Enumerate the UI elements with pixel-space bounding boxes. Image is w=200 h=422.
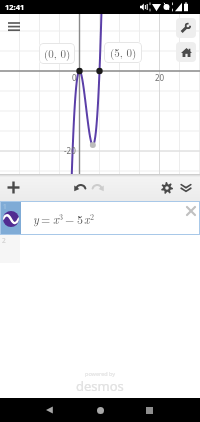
staticText: 2 [2,236,6,245]
button[interactable]: Recent apps [141,398,158,422]
button[interactable]: Back [41,398,58,422]
button[interactable]: Add expression [1,174,25,201]
staticText: x [53,210,59,227]
button[interactable]: Menu [3,15,25,37]
button[interactable]: Settings [157,174,177,201]
staticText: powered by [85,370,116,377]
button[interactable]: Collapse keypad [176,174,196,201]
staticText: (5, 0) [110,45,137,61]
button[interactable]: Home [91,401,109,419]
staticText: 5 [77,210,84,227]
staticText: 3 [59,211,63,222]
staticText: 0 [72,72,77,83]
button[interactable]: Redo [88,174,108,201]
staticText: -20 [64,145,76,156]
staticText: − [65,210,75,227]
staticText: 2 [90,211,94,222]
staticText: = [41,210,51,227]
button[interactable]: 2 [0,235,200,263]
button[interactable]: 1 [1,202,199,234]
staticText: desmos [76,377,124,395]
button[interactable]: Home view [176,42,196,62]
button[interactable]: Tools [176,18,196,38]
staticText: 1 [3,202,7,211]
button[interactable]: Delete expression [181,201,200,221]
staticText: (0, 0) [44,46,71,62]
staticText: 20 [155,72,165,83]
staticText: y [33,210,39,227]
button[interactable]: Undo [70,174,90,201]
staticText: x [84,210,90,227]
staticText: 12:41 [5,2,25,12]
